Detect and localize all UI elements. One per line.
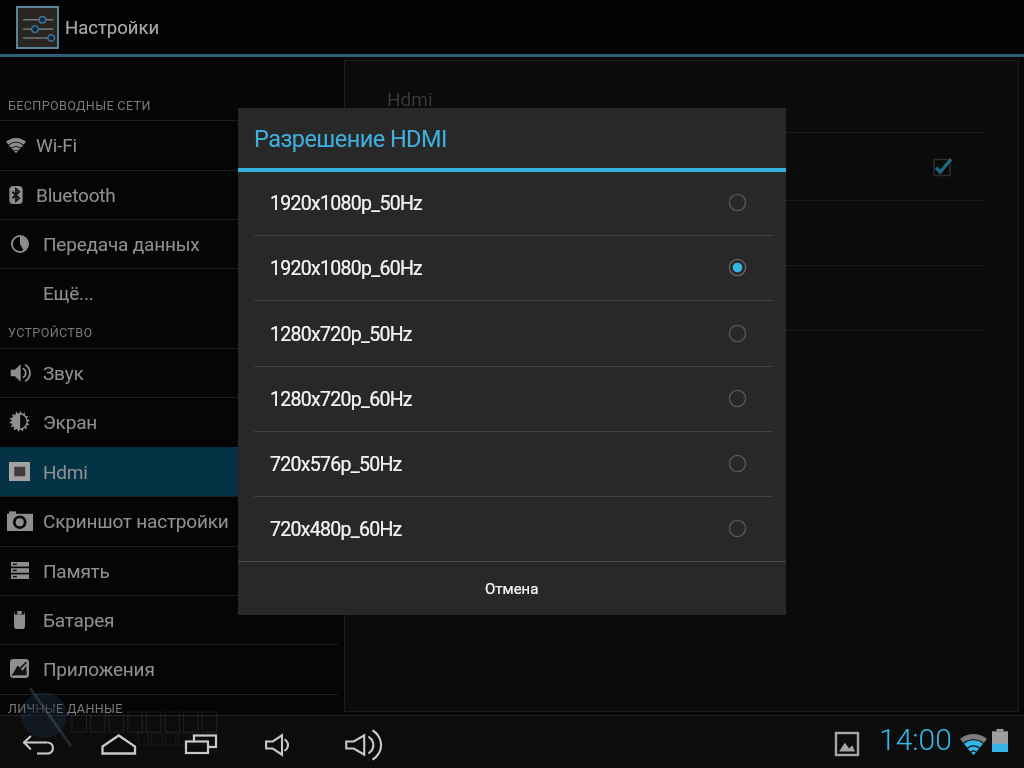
button[interactable]: Экран bbox=[0, 397, 338, 446]
staticText: Hdmi bbox=[387, 88, 433, 110]
button[interactable]: Bluetooth bbox=[0, 170, 338, 220]
staticText: Настройки bbox=[65, 17, 160, 39]
staticText: Разрешение HDMI bbox=[254, 125, 447, 153]
staticText: Экран bbox=[43, 411, 98, 433]
staticText: 1920x1080p_60Hz bbox=[270, 257, 423, 280]
button[interactable]: Память bbox=[0, 546, 338, 595]
staticText: Память bbox=[43, 560, 110, 582]
button[interactable]: Wi-Fi bbox=[0, 120, 338, 170]
staticText: 14:00 bbox=[879, 722, 952, 757]
button[interactable]: Toggle bbox=[933, 158, 954, 179]
button[interactable]: 1280x720p_50Hz bbox=[238, 302, 786, 367]
button[interactable]: Передача данных bbox=[0, 219, 338, 269]
button[interactable]: Volume down bbox=[243, 716, 315, 768]
button[interactable]: 1920x1080p_50Hz bbox=[238, 171, 786, 236]
button[interactable]: Звук bbox=[0, 348, 338, 397]
staticText: Приложения bbox=[43, 658, 155, 680]
staticText: Звук bbox=[43, 362, 84, 384]
button[interactable]: Ещё... bbox=[0, 268, 338, 318]
staticText: 720x480p_60Hz bbox=[270, 518, 402, 541]
staticText: Bluetooth bbox=[36, 184, 116, 206]
button[interactable]: Отмена bbox=[238, 562, 786, 615]
button[interactable]: Hdmi bbox=[0, 447, 338, 496]
staticText: 1280x720p_60Hz bbox=[270, 388, 412, 411]
button[interactable]: 720x576p_50Hz bbox=[238, 432, 786, 497]
staticText: 720x576p_50Hz bbox=[270, 453, 402, 476]
staticText: Скриншот настройки bbox=[43, 510, 229, 532]
staticText: УСТРОЙСТВО bbox=[8, 325, 93, 340]
button[interactable]: 1920x1080p_60Hz bbox=[238, 236, 786, 301]
button[interactable]: Скриншот настройки bbox=[0, 496, 338, 545]
button[interactable]: Батарея bbox=[0, 595, 338, 644]
staticText: БЕСПРОВОДНЫЕ СЕТИ bbox=[8, 98, 151, 113]
staticText: Hdmi bbox=[43, 461, 88, 483]
staticText: Передача данных bbox=[43, 233, 200, 255]
button[interactable]: Recent apps bbox=[165, 716, 237, 768]
staticText: 1280x720p_50Hz bbox=[270, 323, 412, 346]
button[interactable]: 720x480p_60Hz bbox=[238, 497, 786, 562]
staticText: Ещё... bbox=[43, 282, 94, 304]
button[interactable]: Back bbox=[3, 716, 75, 768]
button[interactable]: Приложения bbox=[0, 644, 338, 693]
staticText: Wi-Fi bbox=[36, 134, 77, 156]
staticText: ЛИЧНЫЕ ДАННЫЕ bbox=[8, 701, 123, 716]
button[interactable]: Volume up bbox=[327, 716, 399, 768]
staticText: 1920x1080p_50Hz bbox=[270, 192, 423, 215]
staticText: Отмена bbox=[485, 580, 539, 598]
button[interactable]: 1280x720p_60Hz bbox=[238, 367, 786, 432]
button[interactable]: Screenshot bbox=[836, 733, 858, 755]
staticText: Батарея bbox=[43, 609, 115, 631]
button[interactable]: Home bbox=[83, 716, 155, 768]
